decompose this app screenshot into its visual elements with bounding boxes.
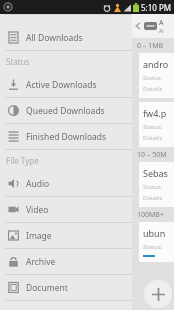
- button[interactable]: ubun: [139, 222, 174, 262]
- button[interactable]: Back: [134, 22, 142, 30]
- button[interactable]: Sebas: [139, 162, 174, 207]
- staticText: 0 – 1MB: [137, 41, 164, 51]
- staticText: 100MB+: [137, 210, 164, 220]
- staticText: Sebas: [143, 167, 168, 179]
- staticText: Status:: [143, 123, 163, 131]
- button[interactable]: Active Downloads: [0, 72, 132, 97]
- staticText: Details: [143, 134, 163, 142]
- button[interactable]: Add download: [144, 280, 172, 308]
- staticText: Status:: [143, 243, 163, 251]
- staticText: ubun: [143, 227, 166, 239]
- staticText: 5:10 PM: [141, 2, 172, 13]
- staticText: andro: [143, 58, 169, 70]
- staticText: A: [159, 18, 164, 28]
- button[interactable]: Finished Downloads: [0, 124, 132, 149]
- staticText: Details: [143, 194, 163, 202]
- button[interactable]: Queued Downloads: [0, 98, 132, 123]
- staticText: fw4.p: [143, 107, 167, 119]
- button[interactable]: Archive: [0, 249, 132, 274]
- staticText: Archive: [26, 256, 56, 268]
- staticText: Status:: [143, 183, 163, 191]
- staticText: 10 – 50M: [137, 150, 167, 160]
- staticText: Document: [26, 282, 68, 294]
- staticText: Image: [26, 230, 52, 242]
- staticText: Finished Downloads: [26, 131, 107, 143]
- button[interactable]: All Downloads: [0, 25, 132, 50]
- staticText: Active Downloads: [26, 79, 97, 91]
- staticText: Status:: [143, 74, 163, 82]
- button[interactable]: Audio: [0, 171, 132, 196]
- button[interactable]: Video: [0, 197, 132, 222]
- staticText: All Downloads: [26, 32, 83, 44]
- staticText: Status: [6, 56, 30, 67]
- staticText: File Type: [6, 155, 39, 166]
- button[interactable]: andro: [139, 53, 174, 98]
- staticText: Video: [26, 204, 49, 216]
- staticText: Details: [143, 85, 163, 93]
- staticText: Audio: [26, 178, 50, 190]
- staticText: Queued Downloads: [26, 105, 105, 117]
- button[interactable]: Image: [0, 223, 132, 248]
- staticText: Al: [159, 28, 164, 35]
- button[interactable]: Document: [0, 275, 132, 300]
- button[interactable]: fw4.p: [139, 102, 174, 147]
